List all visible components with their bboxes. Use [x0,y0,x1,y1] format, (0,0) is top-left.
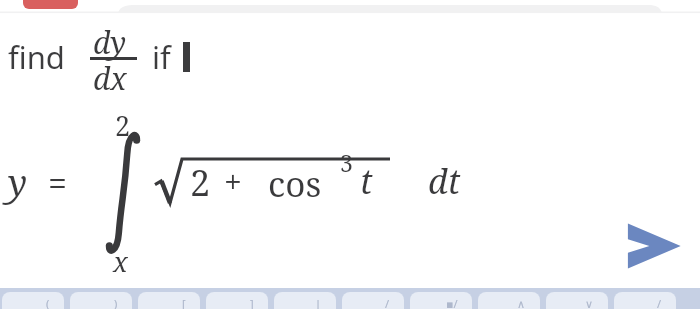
staticText: x [113,243,128,280]
button[interactable]: Key / [342,292,404,309]
staticText: 2 [190,158,211,207]
staticText: + [224,160,242,204]
button[interactable]: Key ) [70,292,132,309]
staticText: find [8,36,65,78]
staticText: ∨ [585,298,594,309]
staticText: ) [114,296,118,309]
staticText: 3 [340,147,353,178]
staticText: y [8,158,28,207]
button[interactable]: Next [625,218,683,274]
button[interactable]: Key [ [138,292,200,309]
button[interactable]: Key / [614,292,676,309]
staticText: | [315,296,322,309]
button[interactable]: Key ▪/ [410,292,472,309]
staticText: dt [428,158,461,204]
staticText: [ [182,296,186,309]
staticText: 2 [115,107,131,144]
button[interactable]: Active tab [23,0,78,9]
button[interactable]: Key | [274,292,336,309]
staticText: dy [93,22,127,63]
button[interactable]: Key ( [2,292,64,309]
staticText: ] [250,296,254,309]
staticText: = [48,160,68,206]
staticText: if [152,36,171,78]
staticText: dx [93,58,127,99]
button[interactable]: Key ∧ [478,292,540,309]
staticText: ( [46,296,50,309]
staticText: / [385,296,390,309]
staticText: ∧ [517,298,526,309]
staticText: t [360,158,373,204]
staticText: ▪/ [446,296,458,309]
button[interactable]: Key ] [206,292,268,309]
staticText: / [657,296,662,309]
button[interactable]: Key ∨ [546,292,608,309]
staticText: cos [268,160,322,208]
